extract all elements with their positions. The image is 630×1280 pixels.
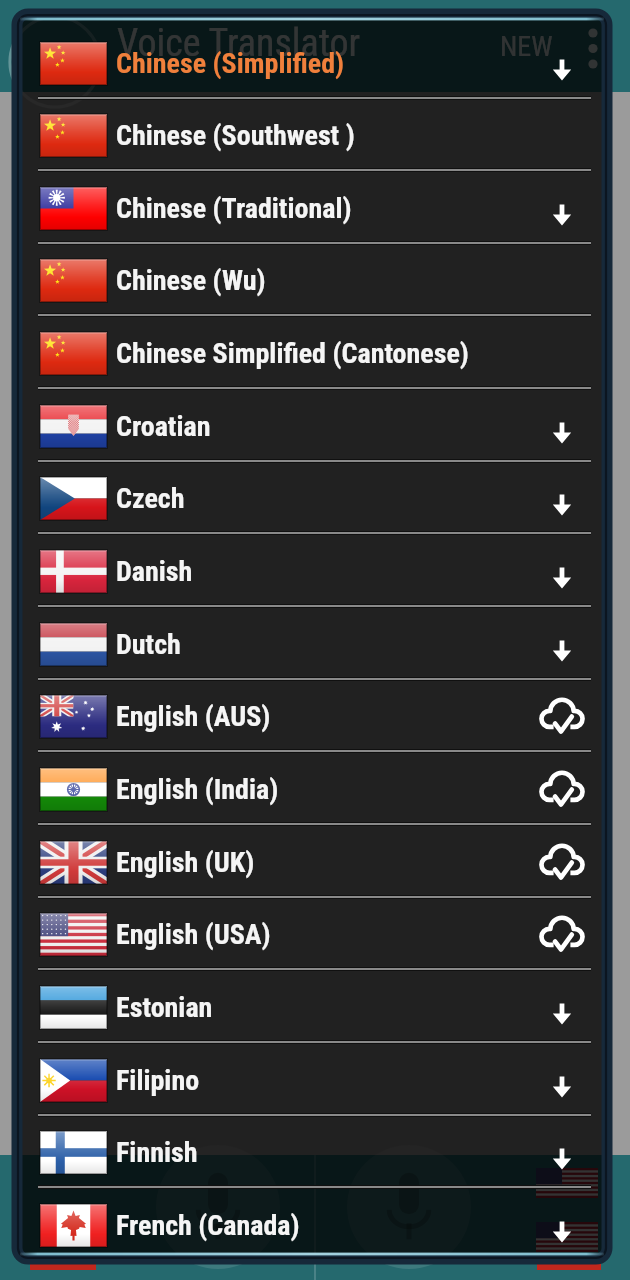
button[interactable]: Chinese (Simplified) — [24, 27, 600, 100]
staticText: Chinese (Traditional) — [116, 192, 352, 225]
staticText: French (Canada) — [116, 1209, 300, 1242]
other: Download — [549, 1219, 575, 1245]
staticText: English (UK) — [116, 846, 255, 879]
staticText: Chinese Simplified (Cantonese) — [116, 337, 469, 370]
staticText: Croatian — [116, 410, 211, 443]
staticText: Filipino — [116, 1064, 200, 1097]
button[interactable]: Chinese (Traditional) — [24, 172, 600, 245]
button[interactable]: Chinese (Southwest ) — [24, 99, 600, 172]
button[interactable]: Croatian — [24, 390, 600, 463]
staticText: English (AUS) — [116, 700, 271, 733]
button[interactable]: French (Canada) — [24, 1189, 600, 1259]
other: Download — [549, 1146, 575, 1172]
other: Download — [549, 492, 575, 518]
button[interactable]: Filipino — [24, 1044, 600, 1117]
other: Downloaded — [534, 907, 590, 963]
other: Downloaded — [534, 762, 590, 818]
other: Download — [549, 638, 575, 664]
other: Download — [549, 420, 575, 446]
staticText: Estonian — [116, 991, 213, 1024]
staticText: Czech — [116, 482, 185, 515]
other: Download — [549, 565, 575, 591]
button[interactable]: Chinese (Wu) — [24, 244, 600, 317]
button[interactable]: Chinese Simplified (Cantonese) — [24, 317, 600, 390]
button[interactable]: Czech — [24, 462, 600, 535]
staticText: NEW — [500, 30, 553, 63]
staticText: Chinese (Southwest ) — [116, 119, 355, 152]
button[interactable]: Dutch — [24, 608, 600, 681]
staticText: Finnish — [116, 1136, 198, 1169]
button[interactable]: English (UK) — [24, 826, 600, 899]
other: Download — [549, 1074, 575, 1100]
button[interactable]: English (AUS) — [24, 680, 600, 753]
other: Download — [549, 202, 575, 228]
staticText: Chinese (Simplified) — [116, 47, 345, 80]
staticText: Dutch — [116, 628, 181, 661]
button[interactable]: Finnish — [24, 1116, 600, 1189]
button[interactable]: English (USA) — [24, 898, 600, 971]
button[interactable]: Estonian — [24, 971, 600, 1044]
staticText: English (India) — [116, 773, 279, 806]
other: Download — [549, 57, 575, 83]
other: Downloaded — [534, 689, 590, 745]
other: Downloaded — [534, 835, 590, 891]
button[interactable]: Danish — [24, 535, 600, 608]
other: Download — [549, 1001, 575, 1027]
staticText: Voice Translator — [117, 21, 361, 66]
staticText: Chinese (Wu) — [116, 264, 266, 297]
staticText: English (USA) — [116, 918, 271, 951]
staticText: Danish — [116, 555, 193, 588]
button[interactable]: English (India) — [24, 753, 600, 826]
